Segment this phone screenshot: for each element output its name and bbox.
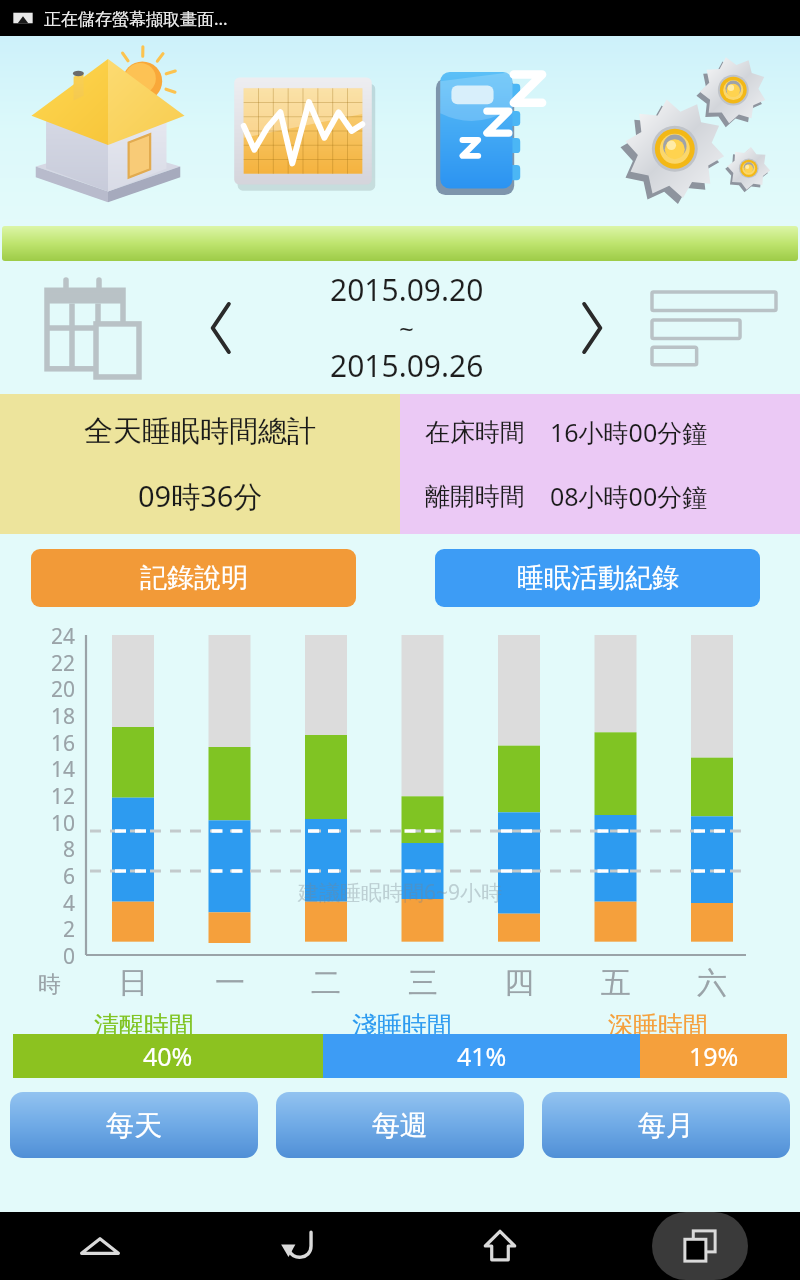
staticText: 一 — [215, 964, 245, 1002]
button[interactable]: 19% — [640, 1034, 787, 1078]
staticText: 6 — [63, 862, 76, 889]
staticText: 19% — [689, 1039, 739, 1073]
button[interactable]: 在床時間 — [400, 394, 800, 534]
button[interactable]: 每天 — [10, 1092, 258, 1158]
button[interactable]: Recent apps — [600, 1212, 800, 1280]
staticText: 清醒時間 — [94, 1010, 194, 1041]
staticText: 16 — [51, 729, 76, 756]
staticText: 0 — [63, 942, 76, 969]
staticText: 22 — [51, 649, 76, 676]
staticText: 四 — [504, 964, 534, 1002]
staticText: 三 — [408, 964, 438, 1002]
button[interactable]: Home — [22, 42, 194, 220]
staticText: 在床時間 — [425, 417, 525, 448]
staticText: 8 — [63, 835, 76, 862]
staticText: 10 — [51, 809, 76, 836]
button[interactable]: 全天睡眠時間總計 — [0, 394, 400, 534]
staticText: 時 — [38, 970, 61, 999]
staticText: 18 — [51, 702, 76, 729]
staticText: 09時36分 — [138, 476, 263, 516]
button[interactable]: Sleep diary — [411, 42, 583, 220]
staticText: 每月 — [638, 1108, 694, 1143]
button[interactable]: Menu — [0, 1212, 200, 1280]
button[interactable]: 每月 — [542, 1092, 790, 1158]
staticText: 二 — [311, 964, 341, 1002]
staticText: 日 — [118, 964, 148, 1002]
staticText: 六 — [697, 964, 727, 1002]
staticText: 41% — [457, 1039, 507, 1073]
button[interactable]: 睡眠活動紀錄 — [435, 549, 760, 607]
staticText: 離開時間 — [425, 481, 525, 512]
button[interactable]: Activity chart — [217, 42, 389, 220]
button[interactable]: Calendar — [0, 261, 185, 394]
staticText: 每天 — [106, 1108, 162, 1143]
staticText: 深睡時間 — [608, 1010, 708, 1041]
staticText: 40% — [143, 1039, 193, 1073]
staticText: 14 — [51, 755, 76, 782]
button[interactable]: 40% — [13, 1034, 323, 1078]
staticText: 16小時00分鐘 — [550, 415, 708, 449]
staticText: 正在儲存螢幕擷取畫面... — [44, 7, 228, 30]
staticText: 記錄說明 — [140, 561, 248, 595]
staticText: ~ — [399, 310, 414, 345]
staticText: 建議睡眠時間6~9小時 — [298, 878, 503, 907]
button[interactable]: Back — [200, 1212, 400, 1280]
button[interactable]: 每週 — [276, 1092, 524, 1158]
staticText: 24 — [51, 622, 76, 649]
button[interactable]: 記錄說明 — [31, 549, 356, 607]
staticText: 20 — [51, 675, 76, 702]
button[interactable]: Settings — [606, 42, 778, 220]
button[interactable]: 41% — [323, 1034, 640, 1078]
staticText: 12 — [51, 782, 76, 809]
staticText: 2 — [63, 915, 76, 942]
staticText: 4 — [63, 889, 76, 916]
staticText: 2015.09.20 — [330, 269, 484, 310]
staticText: 每週 — [372, 1108, 428, 1143]
button[interactable]: List view — [628, 261, 800, 394]
button[interactable]: Previous week — [185, 261, 257, 394]
staticText: 08小時00分鐘 — [550, 479, 708, 513]
staticText: 睡眠活動紀錄 — [517, 561, 679, 595]
staticText: 2015.09.26 — [330, 345, 484, 386]
staticText: 全天睡眠時間總計 — [84, 413, 316, 450]
button[interactable]: Next week — [556, 261, 628, 394]
button[interactable]: Home — [400, 1212, 600, 1280]
staticText: 五 — [601, 964, 631, 1002]
staticText: 淺睡時間 — [352, 1010, 452, 1041]
